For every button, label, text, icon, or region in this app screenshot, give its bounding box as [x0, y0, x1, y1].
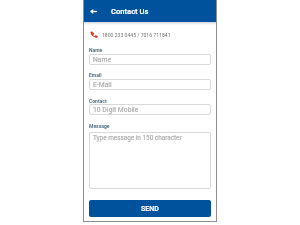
staticText: Name	[93, 56, 112, 64]
staticText: SEND	[141, 205, 159, 213]
button[interactable]: E-Mail	[89, 79, 211, 90]
staticText: 1800 233 0445 / 7016 711841	[102, 32, 171, 38]
staticText: Name	[89, 47, 103, 53]
staticText: Email	[89, 72, 102, 78]
staticText: Type message in 150 character	[93, 134, 182, 142]
button[interactable]: Back	[86, 4, 101, 19]
staticText: Contact	[89, 98, 107, 104]
staticText: Message	[89, 123, 110, 129]
button[interactable]: Name	[89, 54, 211, 65]
button[interactable]: 10 Digit Mobile	[89, 104, 211, 115]
button[interactable]: SEND	[89, 200, 211, 217]
staticText: 10 Digit Mobile	[93, 106, 139, 114]
staticText: Contact Us	[111, 7, 149, 16]
staticText: E-Mail	[93, 81, 112, 89]
button[interactable]: Type message in 150 character	[89, 132, 211, 189]
button[interactable]: 1800 233 0445 / 7016 711841	[86, 25, 214, 44]
